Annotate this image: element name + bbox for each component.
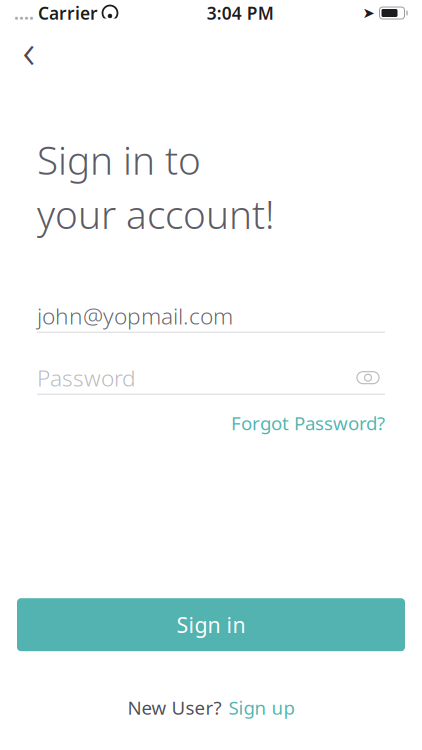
staticText: ‹ [22,18,35,82]
staticText: Password [37,363,136,393]
button[interactable]: Show password [351,363,385,393]
button[interactable]: Forgot Password? [231,406,385,440]
staticText: Sign in to [37,134,201,185]
staticText: Sign up [228,695,294,720]
staticText: New User? [127,695,221,720]
staticText: .... [14,1,34,24]
staticText: john@yopmail.com [37,301,233,331]
button[interactable]: Sign in [17,598,405,651]
staticText: Sign in [176,610,245,639]
staticText: Carrier [38,1,98,24]
staticText: Forgot Password? [231,411,385,435]
button[interactable]: Sign up [228,695,294,720]
staticText: your account! [37,188,275,240]
button[interactable]: Back [7,28,51,72]
staticText: ➤ [362,5,374,21]
staticText: 3:04 PM [207,1,274,24]
